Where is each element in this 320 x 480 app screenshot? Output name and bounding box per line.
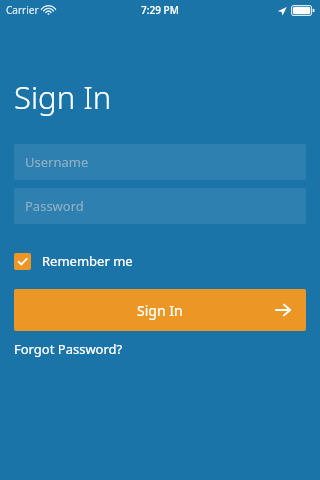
button[interactable]: Password bbox=[14, 188, 306, 224]
staticText: Sign In bbox=[14, 76, 112, 118]
staticText: 7:29 PM bbox=[141, 3, 179, 17]
button[interactable]: Remember me bbox=[14, 252, 133, 270]
other: Sign In bbox=[274, 301, 292, 319]
button[interactable]: Forgot Password? bbox=[14, 340, 123, 358]
staticText: Username bbox=[25, 153, 89, 171]
staticText: Sign In bbox=[137, 301, 183, 320]
staticText: Carrier bbox=[6, 3, 39, 17]
button[interactable]: Sign In bbox=[14, 289, 306, 331]
button[interactable]: Username bbox=[14, 144, 306, 180]
staticText: Remember me bbox=[42, 252, 133, 270]
staticText: Password bbox=[25, 197, 84, 215]
